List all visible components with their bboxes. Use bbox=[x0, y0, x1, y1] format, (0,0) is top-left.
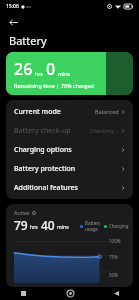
staticText: Battery protection bbox=[14, 164, 76, 174]
button[interactable]: Recents bbox=[0, 287, 47, 300]
staticText: Battery check-up bbox=[14, 126, 71, 136]
staticText: 100% bbox=[109, 238, 121, 244]
button[interactable]: Current mode bbox=[6, 102, 133, 121]
staticText: Remaining time | 76% charged bbox=[14, 82, 95, 89]
staticText: Battery bbox=[9, 33, 47, 48]
staticText: Battery bbox=[85, 220, 101, 226]
staticText: 26 bbox=[14, 58, 33, 80]
staticText: mins bbox=[58, 71, 70, 78]
button[interactable]: 26 bbox=[6, 52, 133, 95]
staticText: hrs bbox=[35, 71, 43, 78]
button[interactable]: Home bbox=[47, 287, 93, 300]
staticText: 50% bbox=[109, 272, 118, 278]
staticText: hrs bbox=[30, 224, 38, 231]
button[interactable]: Back bbox=[93, 287, 139, 300]
staticText: mins bbox=[57, 224, 69, 231]
button[interactable]: Charging options bbox=[6, 140, 133, 159]
button[interactable]: Back bbox=[4, 13, 22, 31]
button[interactable]: Battery check-up bbox=[6, 121, 133, 140]
button[interactable]: Additional features bbox=[6, 178, 133, 197]
staticText: Balanced bbox=[95, 108, 119, 115]
staticText: 75% bbox=[109, 254, 118, 260]
staticText: Charging options bbox=[14, 145, 72, 155]
staticText: Additional features bbox=[14, 183, 78, 193]
staticText: 40 bbox=[41, 217, 55, 233]
staticText: Checking... bbox=[90, 127, 119, 134]
staticText: Charging bbox=[109, 223, 129, 229]
staticText: Current mode bbox=[14, 107, 61, 117]
button[interactable]: Battery protection bbox=[6, 159, 133, 178]
staticText: 79 bbox=[14, 217, 28, 233]
staticText: 15:06 bbox=[6, 3, 19, 10]
staticText: 0 bbox=[46, 58, 56, 80]
staticText: Active bbox=[14, 209, 30, 216]
button[interactable]: Active bbox=[6, 204, 133, 287]
staticText: usage bbox=[85, 226, 98, 232]
